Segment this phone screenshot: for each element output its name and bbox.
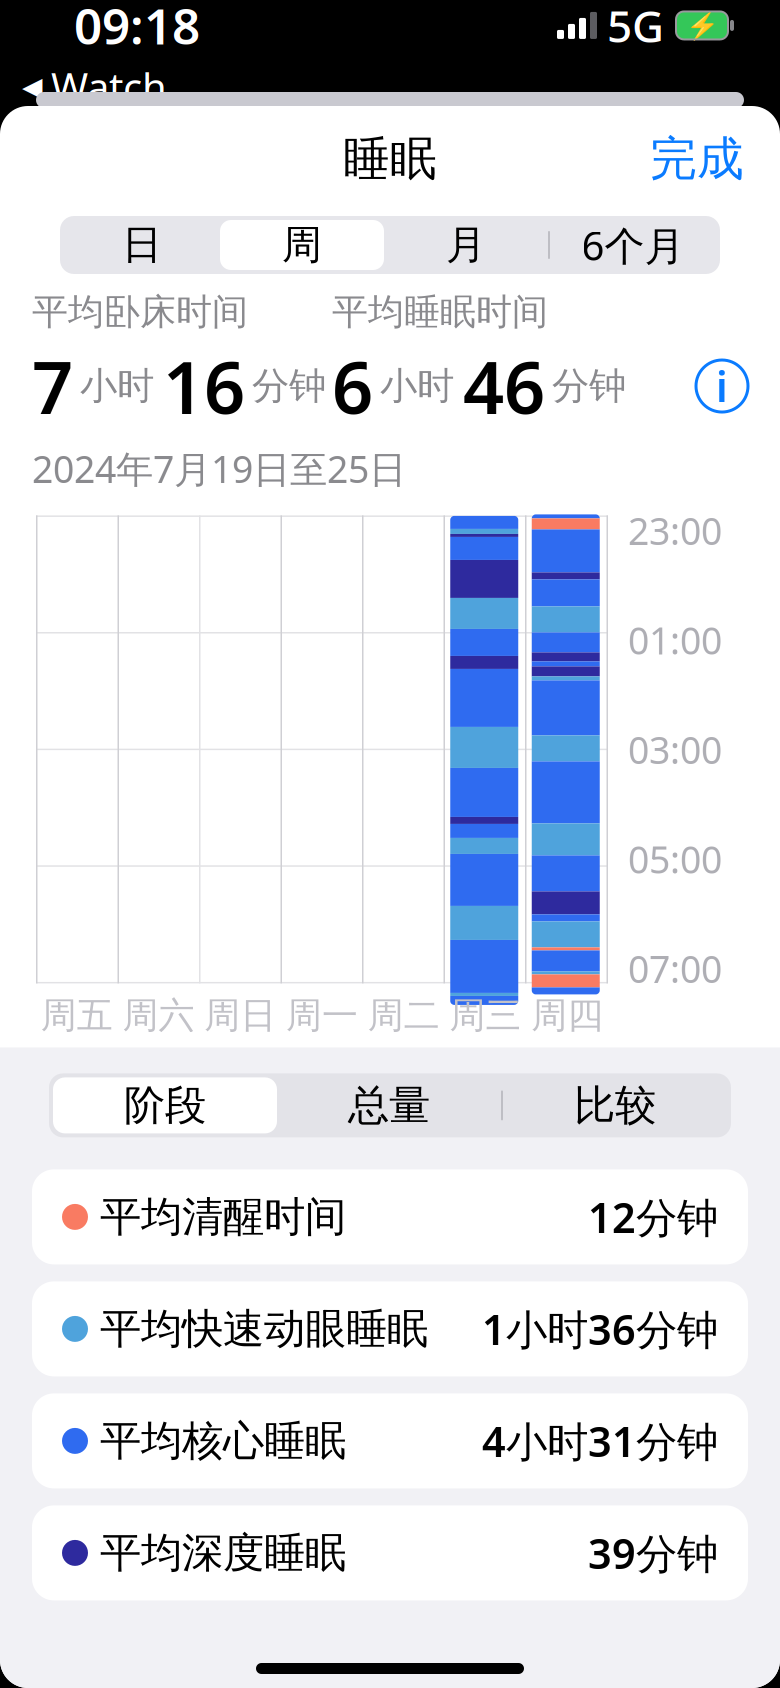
staticText: 03:00 bbox=[628, 725, 722, 774]
staticText: 5G bbox=[607, 0, 664, 55]
staticText: 睡眠 bbox=[343, 130, 437, 188]
staticText: 小时 bbox=[380, 363, 454, 409]
button[interactable]: 平均快速动眼睡眠 bbox=[32, 1281, 748, 1376]
staticText: 周四 bbox=[531, 993, 603, 1037]
staticText: 39分钟 bbox=[588, 1525, 718, 1580]
button[interactable]: 完成 bbox=[640, 122, 754, 196]
staticText: 小时 bbox=[80, 363, 154, 409]
staticText: 01:00 bbox=[628, 615, 722, 665]
staticText: 周一 bbox=[286, 993, 358, 1037]
staticText: 分钟 bbox=[552, 363, 626, 409]
button[interactable]: 阶段 bbox=[53, 1077, 277, 1133]
staticText: 阶段 bbox=[124, 1080, 206, 1131]
staticText: 46 bbox=[463, 338, 545, 434]
button[interactable]: 日 bbox=[64, 220, 220, 270]
button[interactable]: 周 bbox=[220, 220, 384, 270]
staticText: 总量 bbox=[348, 1080, 430, 1131]
staticText: 平均睡眠时间 bbox=[332, 290, 548, 334]
staticText: 完成 bbox=[650, 130, 744, 188]
staticText: 6 bbox=[332, 338, 373, 434]
staticText: ◀ bbox=[22, 72, 43, 102]
staticText: 比较 bbox=[574, 1080, 656, 1131]
staticText: i bbox=[716, 359, 728, 413]
staticText: 周六 bbox=[123, 993, 195, 1037]
staticText: 12分钟 bbox=[588, 1189, 718, 1244]
staticText: 23:00 bbox=[628, 506, 722, 555]
staticText: 周二 bbox=[368, 993, 440, 1037]
staticText: 07:00 bbox=[628, 944, 722, 993]
staticText: 平均深度睡眠 bbox=[100, 1527, 346, 1578]
staticText: 周五 bbox=[41, 993, 113, 1037]
button[interactable]: 比较 bbox=[503, 1077, 727, 1133]
staticText: 周三 bbox=[449, 993, 521, 1037]
button[interactable]: 平均深度睡眠 bbox=[32, 1505, 748, 1600]
staticText: 平均快速动眼睡眠 bbox=[100, 1303, 428, 1354]
staticText: ⚡ bbox=[685, 10, 718, 41]
button[interactable]: 平均清醒时间 bbox=[32, 1169, 748, 1264]
staticText: 05:00 bbox=[628, 834, 722, 884]
staticText: 16 bbox=[163, 338, 245, 434]
button[interactable]: 6个月 bbox=[550, 220, 716, 270]
staticText: 1小时36分钟 bbox=[482, 1301, 718, 1356]
staticText: 6个月 bbox=[581, 218, 684, 271]
staticText: 平均核心睡眠 bbox=[100, 1415, 346, 1466]
button[interactable]: 总量 bbox=[277, 1077, 501, 1133]
staticText: 4小时31分钟 bbox=[482, 1413, 718, 1468]
staticText: 平均清醒时间 bbox=[100, 1191, 346, 1242]
staticText: 周 bbox=[282, 220, 322, 269]
staticText: 平均卧床时间 bbox=[32, 290, 248, 334]
staticText: 分钟 bbox=[252, 363, 326, 409]
button[interactable]: 平均核心睡眠 bbox=[32, 1393, 748, 1488]
staticText: 09:18 bbox=[74, 0, 200, 58]
staticText: 日 bbox=[122, 220, 162, 269]
staticText: 月 bbox=[446, 220, 486, 269]
button[interactable]: 更多信息 bbox=[696, 360, 748, 412]
button[interactable]: 月 bbox=[384, 220, 548, 270]
staticText: 2024年7月19日至25日 bbox=[32, 444, 406, 493]
staticText: Watch bbox=[51, 60, 167, 113]
staticText: 周日 bbox=[204, 993, 276, 1037]
staticText: 7 bbox=[32, 338, 73, 434]
